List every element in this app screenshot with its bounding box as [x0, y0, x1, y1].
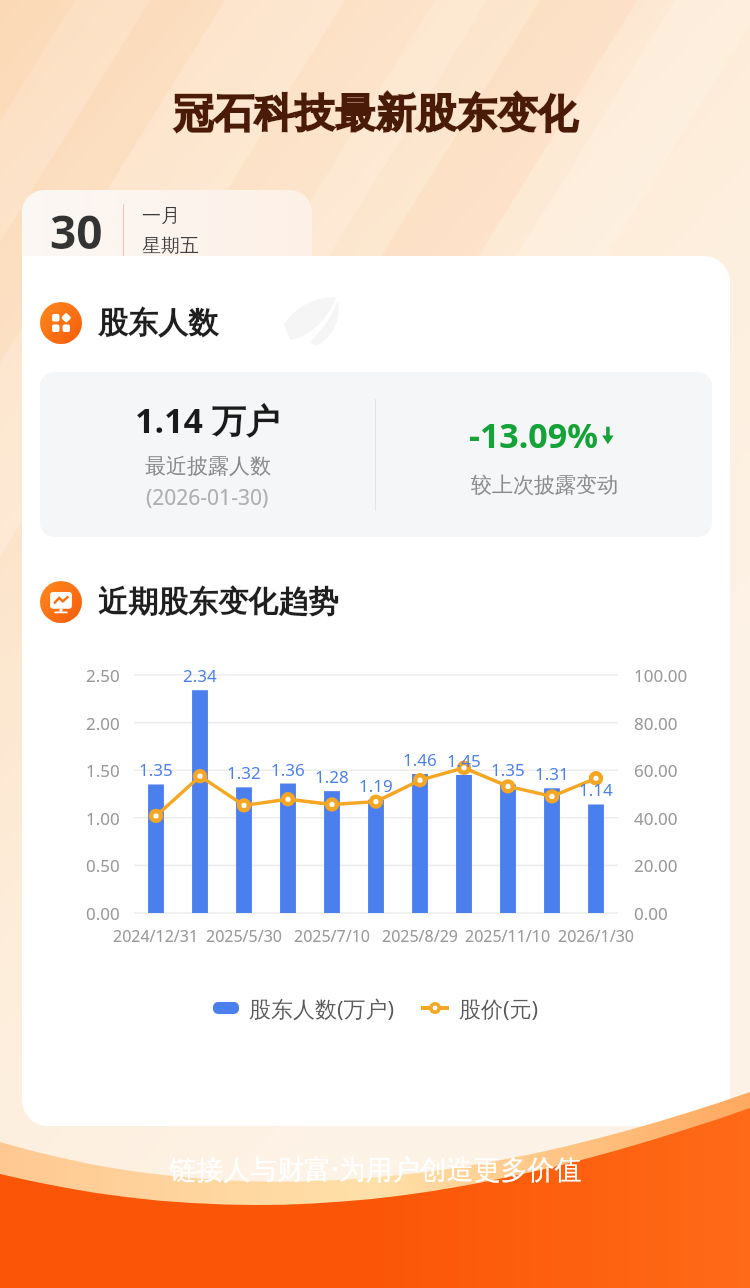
staticText: 1.19: [359, 774, 393, 797]
staticText: 40.00: [634, 807, 678, 830]
button[interactable]: 股东人数(万户): [213, 993, 395, 1023]
staticText: 2026/1/30: [558, 925, 634, 947]
staticText: 1.31: [535, 762, 569, 785]
staticText: 2024/12/31: [113, 925, 199, 947]
staticText: 冠石科技最新股东变化: [173, 88, 578, 138]
staticText: 近期股东变化趋势: [98, 583, 338, 621]
staticText: 1.32: [227, 761, 261, 784]
staticText: 2025/8/29: [382, 925, 458, 947]
staticText: 2025/5/30: [206, 925, 282, 947]
staticText: 较上次披露变动: [471, 472, 618, 498]
staticText: 最近披露人数: [145, 453, 271, 479]
staticText: (2026-01-30): [146, 483, 269, 512]
staticText: 80.00: [634, 712, 678, 735]
button[interactable]: 30: [22, 190, 312, 272]
button[interactable]: 股价(元): [421, 993, 539, 1023]
staticText: 1.00: [86, 807, 120, 830]
staticText: 1.35: [139, 758, 173, 781]
staticText: 0.00: [86, 902, 120, 925]
staticText: 60.00: [634, 759, 678, 782]
staticText: 1.28: [315, 765, 349, 788]
staticText: -13.09%: [469, 412, 598, 458]
staticText: 2.00: [86, 712, 120, 735]
staticText: 1.14 万户: [135, 397, 280, 443]
staticText: 股东人数: [98, 304, 218, 342]
staticText: 0.50: [86, 854, 120, 877]
staticText: 20.00: [634, 854, 678, 877]
staticText: 1.46: [403, 748, 437, 771]
button[interactable]: 1.14 万户: [40, 372, 712, 537]
staticText: 30: [50, 200, 103, 263]
staticText: 1.45: [447, 749, 481, 772]
staticText: 股东人数(万户): [249, 993, 395, 1023]
staticText: 1.50: [86, 759, 120, 782]
staticText: 一月: [142, 204, 180, 228]
staticText: 股价(元): [459, 993, 539, 1023]
button[interactable]: 近期股东变化趋势: [40, 581, 730, 623]
staticText: 2.34: [183, 664, 217, 687]
staticText: 2.50: [86, 664, 120, 687]
staticText: 2025/7/10: [294, 925, 370, 947]
staticText: 链接人与财富·为用户创造更多价值: [169, 1150, 582, 1187]
button[interactable]: 股东人数: [40, 302, 730, 344]
staticText: 1.14: [579, 778, 613, 801]
staticText: 星期五: [142, 234, 199, 258]
staticText: 2025/11/10: [465, 925, 551, 947]
staticText: 100.00: [634, 664, 688, 687]
staticText: 0.00: [634, 902, 668, 925]
staticText: 1.36: [271, 758, 305, 781]
staticText: 1.35: [491, 758, 525, 781]
